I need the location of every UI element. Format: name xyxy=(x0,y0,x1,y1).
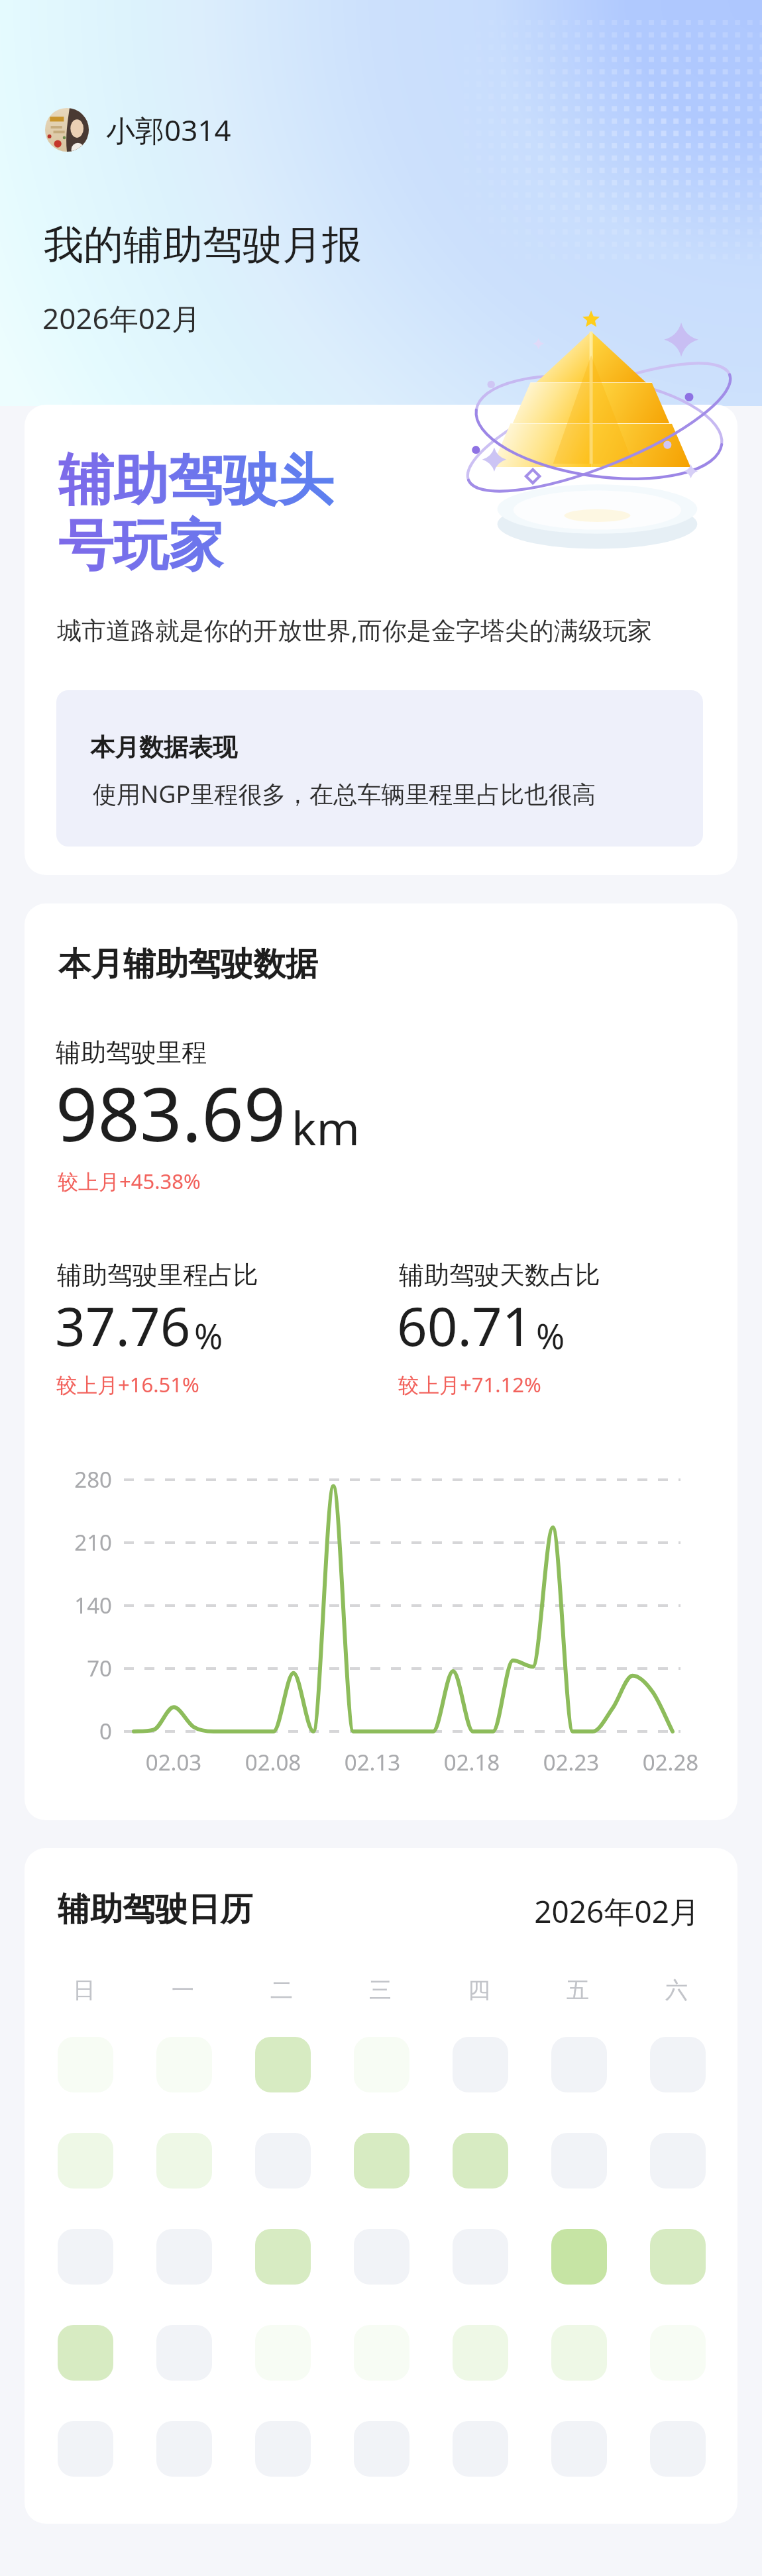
staticText: 02.13 xyxy=(319,1747,425,1777)
staticText: 辅助驾驶里程占比 xyxy=(57,1259,258,1291)
staticText: 70 xyxy=(38,1653,112,1683)
staticText: 城市道路就是你的开放世界,而你是金字塔尖的满级玩家 xyxy=(57,613,652,646)
staticText: 本月辅助驾驶数据 xyxy=(58,944,318,985)
staticText: 140 xyxy=(38,1590,112,1620)
staticText: 较上月+71.12% xyxy=(398,1370,541,1398)
staticText: 使用NGP里程很多，在总车辆里程里占比也很高 xyxy=(93,778,596,810)
staticText: 辅助驾驶里程 xyxy=(56,1037,207,1068)
staticText: 02.28 xyxy=(618,1747,724,1777)
staticText: 五 xyxy=(567,1976,589,2004)
staticText: 三 xyxy=(369,1976,392,2004)
staticText: 2026年02月 xyxy=(42,298,201,338)
staticText: 60.71 xyxy=(397,1289,533,1361)
staticText: 02.03 xyxy=(121,1747,227,1777)
button[interactable]: 小郭0314 xyxy=(45,108,231,152)
staticText: 较上月+45.38% xyxy=(58,1167,201,1195)
staticText: % xyxy=(194,1312,223,1359)
staticText: 02.08 xyxy=(220,1747,326,1777)
staticText: 六 xyxy=(665,1976,688,2004)
staticText: 2026年02月 xyxy=(488,1890,700,1932)
staticText: 日 xyxy=(73,1976,95,2004)
staticText: 较上月+16.51% xyxy=(56,1370,199,1398)
staticText: 210 xyxy=(38,1527,112,1557)
staticText: 四 xyxy=(468,1976,490,2004)
staticText: 我的辅助驾驶月报 xyxy=(44,220,362,270)
staticText: 37.76 xyxy=(55,1289,191,1361)
staticText: 辅助驾驶日历 xyxy=(58,1889,252,1930)
staticText: km xyxy=(292,1096,360,1159)
staticText: % xyxy=(536,1312,565,1359)
staticText: 一 xyxy=(172,1976,194,2004)
staticText: 本月数据表现 xyxy=(90,732,237,763)
staticText: 小郭0314 xyxy=(106,110,231,150)
staticText: 辅助驾驶头 号玩家 xyxy=(58,446,333,581)
staticText: 02.23 xyxy=(518,1747,624,1777)
staticText: 辅助驾驶天数占比 xyxy=(399,1259,600,1291)
staticText: 280 xyxy=(38,1465,112,1494)
staticText: 02.18 xyxy=(419,1747,525,1777)
staticText: 0 xyxy=(38,1716,112,1746)
staticText: 二 xyxy=(270,1976,293,2004)
staticText: 983.69 xyxy=(56,1062,286,1162)
